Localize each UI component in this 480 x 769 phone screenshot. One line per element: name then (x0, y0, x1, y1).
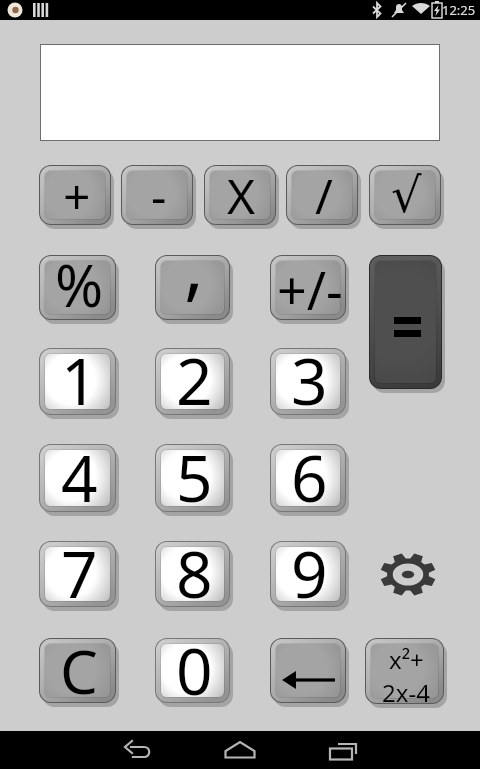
staticText: C (60, 630, 98, 712)
button[interactable]: 3 (270, 348, 349, 419)
button[interactable]: +/- (270, 255, 349, 324)
button[interactable]: √ (369, 165, 444, 229)
button[interactable]: Recent apps (301, 731, 385, 769)
button[interactable]: - (121, 165, 196, 229)
button[interactable]: Back (96, 731, 180, 769)
staticText: X (227, 163, 256, 228)
button[interactable]: / (286, 165, 361, 229)
staticText: 0 (176, 627, 213, 714)
staticText: 3 (291, 337, 328, 424)
staticText: 9 (291, 530, 328, 617)
staticText: 12:25 (442, 1, 476, 19)
button[interactable]: C (39, 638, 119, 707)
button[interactable]: + (39, 165, 114, 229)
staticText: + (63, 163, 91, 228)
staticText: 7 (61, 530, 98, 617)
staticText: 2x-4 (382, 676, 430, 709)
button[interactable]: Settings (380, 553, 436, 596)
staticText: √ (391, 167, 422, 223)
staticText: % (55, 245, 104, 324)
staticText: 5 (176, 434, 213, 521)
button[interactable]: 6 (270, 444, 349, 516)
staticText: / (315, 163, 333, 228)
button[interactable]: 1 (39, 348, 119, 419)
staticText: 2 (176, 337, 213, 424)
button[interactable]: 9 (270, 541, 349, 611)
button[interactable]: , (155, 255, 233, 324)
button[interactable]: 7 (39, 541, 119, 611)
button[interactable]: 8 (155, 541, 233, 611)
staticText: 1 (61, 337, 98, 424)
button[interactable]: 0 (155, 638, 233, 707)
staticText: - (151, 163, 167, 228)
button[interactable]: % (39, 255, 119, 324)
staticText: 8 (176, 530, 213, 617)
button[interactable]: 5 (155, 444, 233, 516)
button[interactable] (270, 638, 349, 707)
staticText: 4 (61, 434, 98, 521)
button[interactable]: x²+ (365, 638, 447, 708)
button[interactable] (369, 255, 445, 393)
button[interactable]: 4 (39, 444, 119, 516)
staticText: , (184, 213, 204, 314)
staticText: 6 (291, 434, 328, 521)
button[interactable]: X (204, 165, 279, 229)
button[interactable]: Home (198, 731, 282, 769)
staticText: +/- (277, 254, 343, 325)
button[interactable]: 2 (155, 348, 233, 419)
staticText: x²+ (389, 643, 424, 676)
